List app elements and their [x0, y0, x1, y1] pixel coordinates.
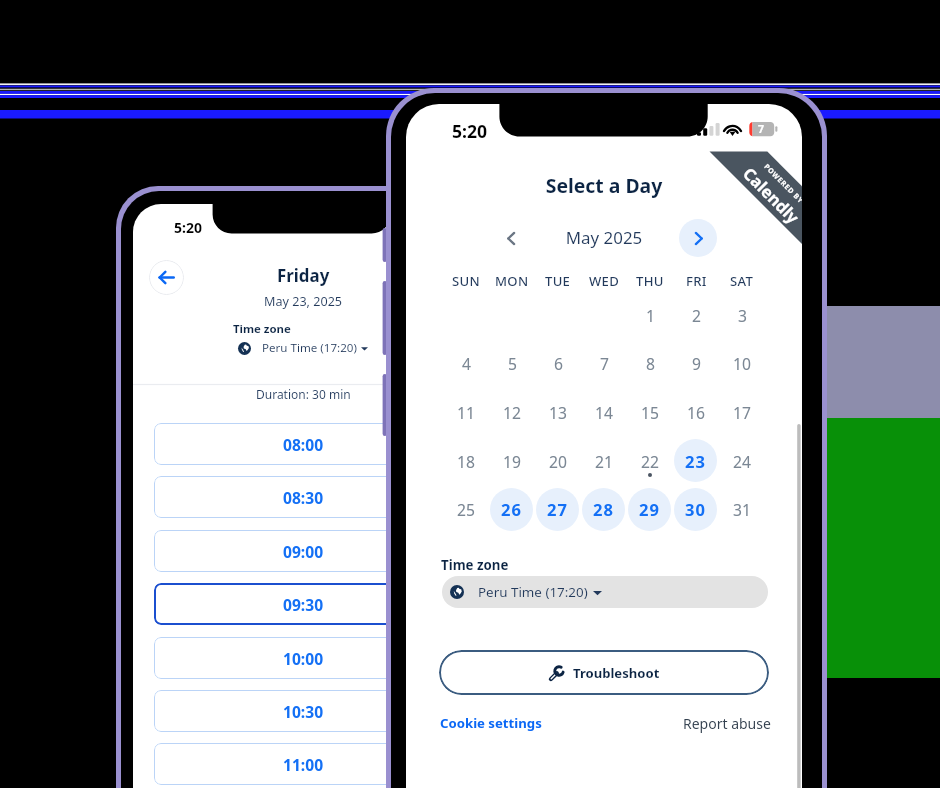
- button[interactable]: 20: [535, 447, 581, 475]
- staticText: May 2025: [406, 226, 802, 249]
- button[interactable]: [582, 488, 625, 531]
- button[interactable]: 17: [719, 398, 765, 426]
- button[interactable]: [674, 488, 717, 531]
- button[interactable]: 1: [627, 301, 673, 329]
- staticText: 10:30: [283, 701, 324, 722]
- button[interactable]: Troubleshoot: [439, 650, 769, 695]
- button[interactable]: Previous month: [493, 220, 529, 256]
- button[interactable]: 11: [443, 398, 489, 426]
- staticText: 11:00: [283, 754, 324, 775]
- button[interactable]: 9: [673, 349, 719, 377]
- staticText: 22: [641, 451, 659, 472]
- staticText: Time zone: [233, 321, 291, 337]
- button[interactable]: 10:00: [154, 637, 452, 679]
- staticText: Friday: [277, 264, 330, 287]
- staticText: Report abuse: [683, 714, 771, 733]
- button[interactable]: 10:30: [154, 690, 452, 732]
- staticText: 17: [733, 402, 751, 423]
- button[interactable]: 4: [443, 349, 489, 377]
- staticText: 5: [508, 353, 517, 374]
- button[interactable]: [628, 488, 671, 531]
- staticText: Time zone: [441, 556, 509, 574]
- button[interactable]: 18: [443, 447, 489, 475]
- staticText: 18: [457, 451, 475, 472]
- staticText: Select a Day: [406, 172, 802, 198]
- staticText: 09:00: [283, 541, 324, 562]
- staticText: 29: [639, 498, 661, 520]
- button[interactable]: 7: [581, 349, 627, 377]
- staticText: 8: [646, 353, 655, 374]
- staticText: 09:30: [283, 594, 324, 615]
- staticText: May 23, 2025: [264, 293, 343, 310]
- staticText: SUN: [452, 272, 480, 290]
- staticText: TUE: [545, 272, 571, 290]
- button[interactable]: 31: [719, 495, 765, 523]
- button[interactable]: 21: [581, 447, 627, 475]
- button[interactable]: 6: [535, 349, 581, 377]
- staticText: 14: [595, 402, 613, 423]
- button[interactable]: 19: [489, 447, 535, 475]
- button[interactable]: [536, 488, 579, 531]
- button[interactable]: 30: [673, 495, 719, 523]
- button[interactable]: 5: [489, 349, 535, 377]
- button[interactable]: 09:00: [154, 530, 452, 572]
- staticText: Peru Time (17:20): [262, 340, 357, 356]
- button[interactable]: 11:00: [154, 743, 452, 785]
- button[interactable]: 23: [673, 447, 719, 475]
- button[interactable]: 27: [535, 495, 581, 523]
- staticText: 9: [692, 353, 701, 374]
- staticText: 21: [595, 451, 613, 472]
- staticText: 1: [646, 305, 655, 326]
- button[interactable]: [490, 488, 533, 531]
- staticText: 28: [593, 498, 615, 520]
- button[interactable]: 08:30: [154, 476, 452, 518]
- staticText: 31: [733, 499, 751, 520]
- button[interactable]: [674, 439, 717, 482]
- button[interactable]: 26: [489, 495, 535, 523]
- button[interactable]: Peru Time (17:20): [442, 576, 768, 608]
- button[interactable]: 16: [673, 398, 719, 426]
- staticText: Cookie settings: [440, 714, 542, 732]
- staticText: 3: [738, 305, 747, 326]
- staticText: THU: [636, 272, 664, 290]
- button[interactable]: 3: [719, 301, 765, 329]
- button[interactable]: 09:30: [154, 583, 452, 625]
- staticText: Calendly: [739, 162, 802, 228]
- button[interactable]: 15: [627, 398, 673, 426]
- button[interactable]: Next month: [679, 219, 717, 257]
- button[interactable]: 2: [673, 301, 719, 329]
- staticText: 26: [501, 498, 523, 520]
- button[interactable]: Back: [149, 260, 184, 295]
- button[interactable]: 12: [489, 398, 535, 426]
- staticText: MON: [495, 272, 529, 290]
- staticText: 16: [687, 402, 705, 423]
- staticText: 23: [685, 450, 707, 472]
- staticText: Duration: 30 min: [256, 386, 351, 402]
- staticText: 30: [685, 498, 707, 520]
- button[interactable]: 24: [719, 447, 765, 475]
- button[interactable]: 13: [535, 398, 581, 426]
- staticText: 12: [503, 402, 521, 423]
- staticText: 6: [554, 353, 563, 374]
- staticText: POWERED BY: [762, 162, 802, 206]
- button[interactable]: 8: [627, 349, 673, 377]
- staticText: 24: [733, 451, 751, 472]
- staticText: 2: [692, 305, 701, 326]
- staticText: 11: [457, 402, 475, 423]
- staticText: 5:20: [452, 119, 488, 143]
- button[interactable]: Cookie settings: [440, 714, 542, 732]
- button[interactable]: 22: [627, 447, 673, 475]
- staticText: 7: [600, 353, 609, 374]
- button[interactable]: 08:00: [154, 423, 452, 465]
- button[interactable]: 28: [581, 495, 627, 523]
- button[interactable]: 25: [443, 495, 489, 523]
- staticText: 08:00: [283, 434, 324, 455]
- button[interactable]: 14: [581, 398, 627, 426]
- button[interactable]: Report abuse: [683, 714, 771, 733]
- staticText: 08:30: [283, 487, 324, 508]
- staticText: 10:00: [283, 648, 324, 669]
- staticText: 4: [462, 353, 471, 374]
- button[interactable]: 29: [627, 495, 673, 523]
- button[interactable]: 10: [719, 349, 765, 377]
- staticText: 7: [758, 122, 765, 136]
